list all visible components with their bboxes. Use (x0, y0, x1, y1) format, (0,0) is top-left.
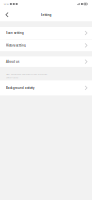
staticText: 16:34 (4, 3, 9, 5)
staticText: Background activity (6, 86, 34, 90)
button[interactable]: History setting (0, 39, 92, 51)
staticText: History setting (6, 43, 26, 47)
button[interactable]: Scan setting (0, 27, 92, 39)
button[interactable]: Background activity (0, 80, 92, 95)
staticText: uninterrupted (6, 76, 18, 79)
staticText: Allow background operation/screen protec… (6, 73, 47, 75)
staticText: About us (6, 60, 19, 63)
button[interactable]: Back (0, 8, 14, 21)
button[interactable]: About us (0, 56, 92, 67)
staticText: Scan setting (6, 31, 24, 35)
staticText: Setting (40, 13, 51, 17)
